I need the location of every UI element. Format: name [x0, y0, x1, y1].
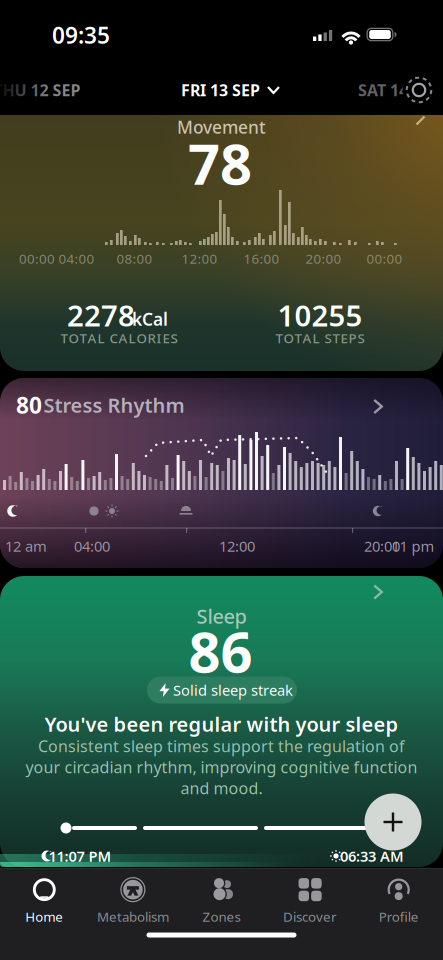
staticText: Metabolism	[97, 908, 169, 925]
staticText: 80	[16, 390, 42, 420]
staticText: You've been regular with your sleep	[44, 711, 398, 737]
staticText: T O T A L S T E P S	[275, 329, 364, 347]
staticText: Stress Rhythm	[43, 392, 184, 418]
staticText: Movement	[177, 115, 266, 138]
button[interactable]: Add	[364, 793, 421, 850]
staticText: 78	[188, 126, 252, 200]
button[interactable]: Metabolism	[89, 873, 177, 929]
staticText: 12:00	[181, 250, 217, 267]
button[interactable]: 80	[0, 378, 443, 568]
staticText: 86	[188, 614, 252, 688]
staticText: 20:00	[364, 536, 400, 556]
staticText: 00:00	[366, 250, 402, 267]
staticText: Zones	[202, 908, 240, 925]
staticText: 00:00	[19, 250, 55, 267]
button[interactable]: SAT 14 SEP	[358, 79, 440, 101]
staticText: Consistent sleep times support the regul…	[38, 735, 405, 757]
staticText: SAT 14 SEP	[358, 79, 440, 101]
staticText: 10255	[277, 295, 362, 334]
button[interactable]: Home	[0, 873, 89, 929]
button[interactable]: Discover	[266, 873, 354, 929]
button[interactable]: THU 12 SEP	[0, 79, 80, 101]
staticText: 06:33 AM	[340, 846, 404, 866]
button[interactable]: Sleep	[0, 576, 443, 867]
staticText: your circadian rhythm, improving cogniti…	[25, 756, 417, 778]
staticText: 16:00	[243, 250, 279, 267]
button[interactable]: Movement	[0, 115, 443, 371]
staticText: and mood.	[180, 777, 262, 799]
staticText: 12 am	[5, 536, 47, 556]
button[interactable]: Profile	[354, 873, 443, 929]
staticText: THU 12 SEP	[0, 79, 80, 101]
staticText: 11:07 PM	[48, 846, 111, 866]
staticText: 08:00	[116, 250, 152, 267]
button[interactable]: Zones	[177, 873, 266, 929]
staticText: 11 pm	[391, 536, 434, 556]
staticText: 04:00	[74, 536, 110, 556]
button[interactable]: FRI 13 SEP	[181, 79, 279, 101]
staticText: Home	[25, 908, 63, 925]
staticText: 09:35	[52, 20, 110, 50]
staticText: FRI 13 SEP	[181, 79, 260, 101]
staticText: T O T A L C A L O R I E S	[60, 329, 177, 347]
staticText: 20:00	[305, 250, 341, 267]
staticText: kCal	[132, 307, 168, 330]
staticText: Solid sleep streak	[173, 680, 293, 700]
staticText: 2278	[67, 295, 135, 334]
staticText: Profile	[379, 908, 419, 925]
staticText: 04:00	[58, 250, 94, 267]
button[interactable]: Settings	[403, 74, 435, 106]
staticText: 12:00	[219, 536, 255, 556]
staticText: Sleep	[196, 603, 246, 629]
staticText: Discover	[283, 908, 337, 925]
